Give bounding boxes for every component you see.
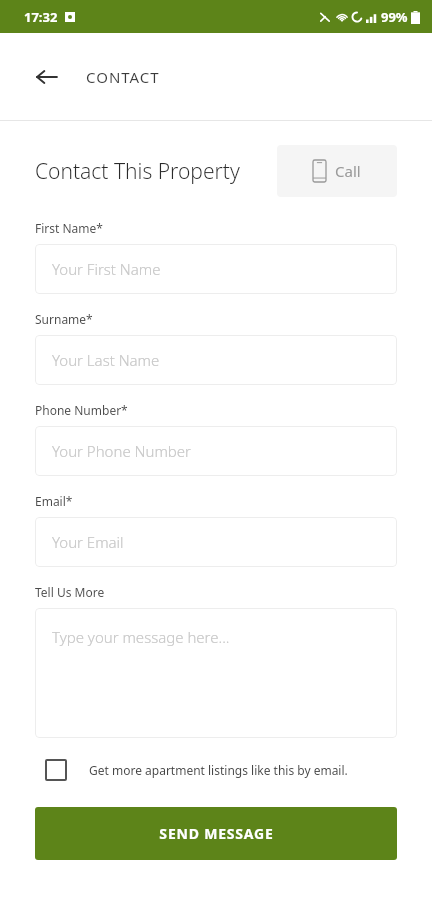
button[interactable]: Your Phone Number <box>35 426 397 476</box>
staticText: 17:32 <box>24 8 58 26</box>
button[interactable]: Back <box>30 60 64 94</box>
staticText: Email* <box>35 493 73 509</box>
button[interactable]: Your Last Name <box>35 335 397 385</box>
staticText: Tell Us More <box>35 584 105 600</box>
button[interactable]: SEND MESSAGE <box>35 807 397 860</box>
staticText: Your Last Name <box>52 350 160 370</box>
staticText: Surname* <box>35 311 93 327</box>
staticText: Get more apartment listings like this by… <box>89 762 348 778</box>
button[interactable]: Call <box>277 145 397 197</box>
staticText: Phone Number* <box>35 402 128 418</box>
button[interactable]: Type your message here... <box>35 608 397 738</box>
staticText: 99% <box>381 8 408 26</box>
button[interactable]: Your Email <box>35 517 397 567</box>
staticText: Your Phone Number <box>52 441 192 461</box>
button[interactable]: Get more apartment listings like this by… <box>35 759 397 781</box>
button[interactable]: Your First Name <box>35 244 397 294</box>
staticText: SEND MESSAGE <box>159 824 274 843</box>
staticText: CONTACT <box>86 67 160 87</box>
staticText: First Name* <box>35 220 103 236</box>
staticText: Call <box>335 161 361 181</box>
staticText: Your First Name <box>52 259 161 279</box>
staticText: Contact This Property <box>35 157 277 186</box>
staticText: Type your message here... <box>52 627 230 647</box>
staticText: Your Email <box>52 532 124 552</box>
